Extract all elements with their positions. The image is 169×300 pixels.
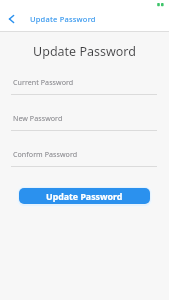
- staticText: Current Password: [13, 77, 74, 87]
- staticText: Update Password: [46, 191, 123, 203]
- staticText: Update Password: [0, 43, 169, 60]
- button[interactable]: New Password: [0, 114, 169, 131]
- button[interactable]: Current Password: [0, 78, 169, 95]
- button[interactable]: Conform Password: [0, 150, 169, 167]
- button[interactable]: Back: [4, 12, 19, 26]
- staticText: Update Password: [30, 14, 96, 24]
- staticText: New Password: [13, 113, 63, 123]
- button[interactable]: Update Password: [19, 188, 150, 204]
- staticText: Conform Password: [13, 149, 78, 159]
